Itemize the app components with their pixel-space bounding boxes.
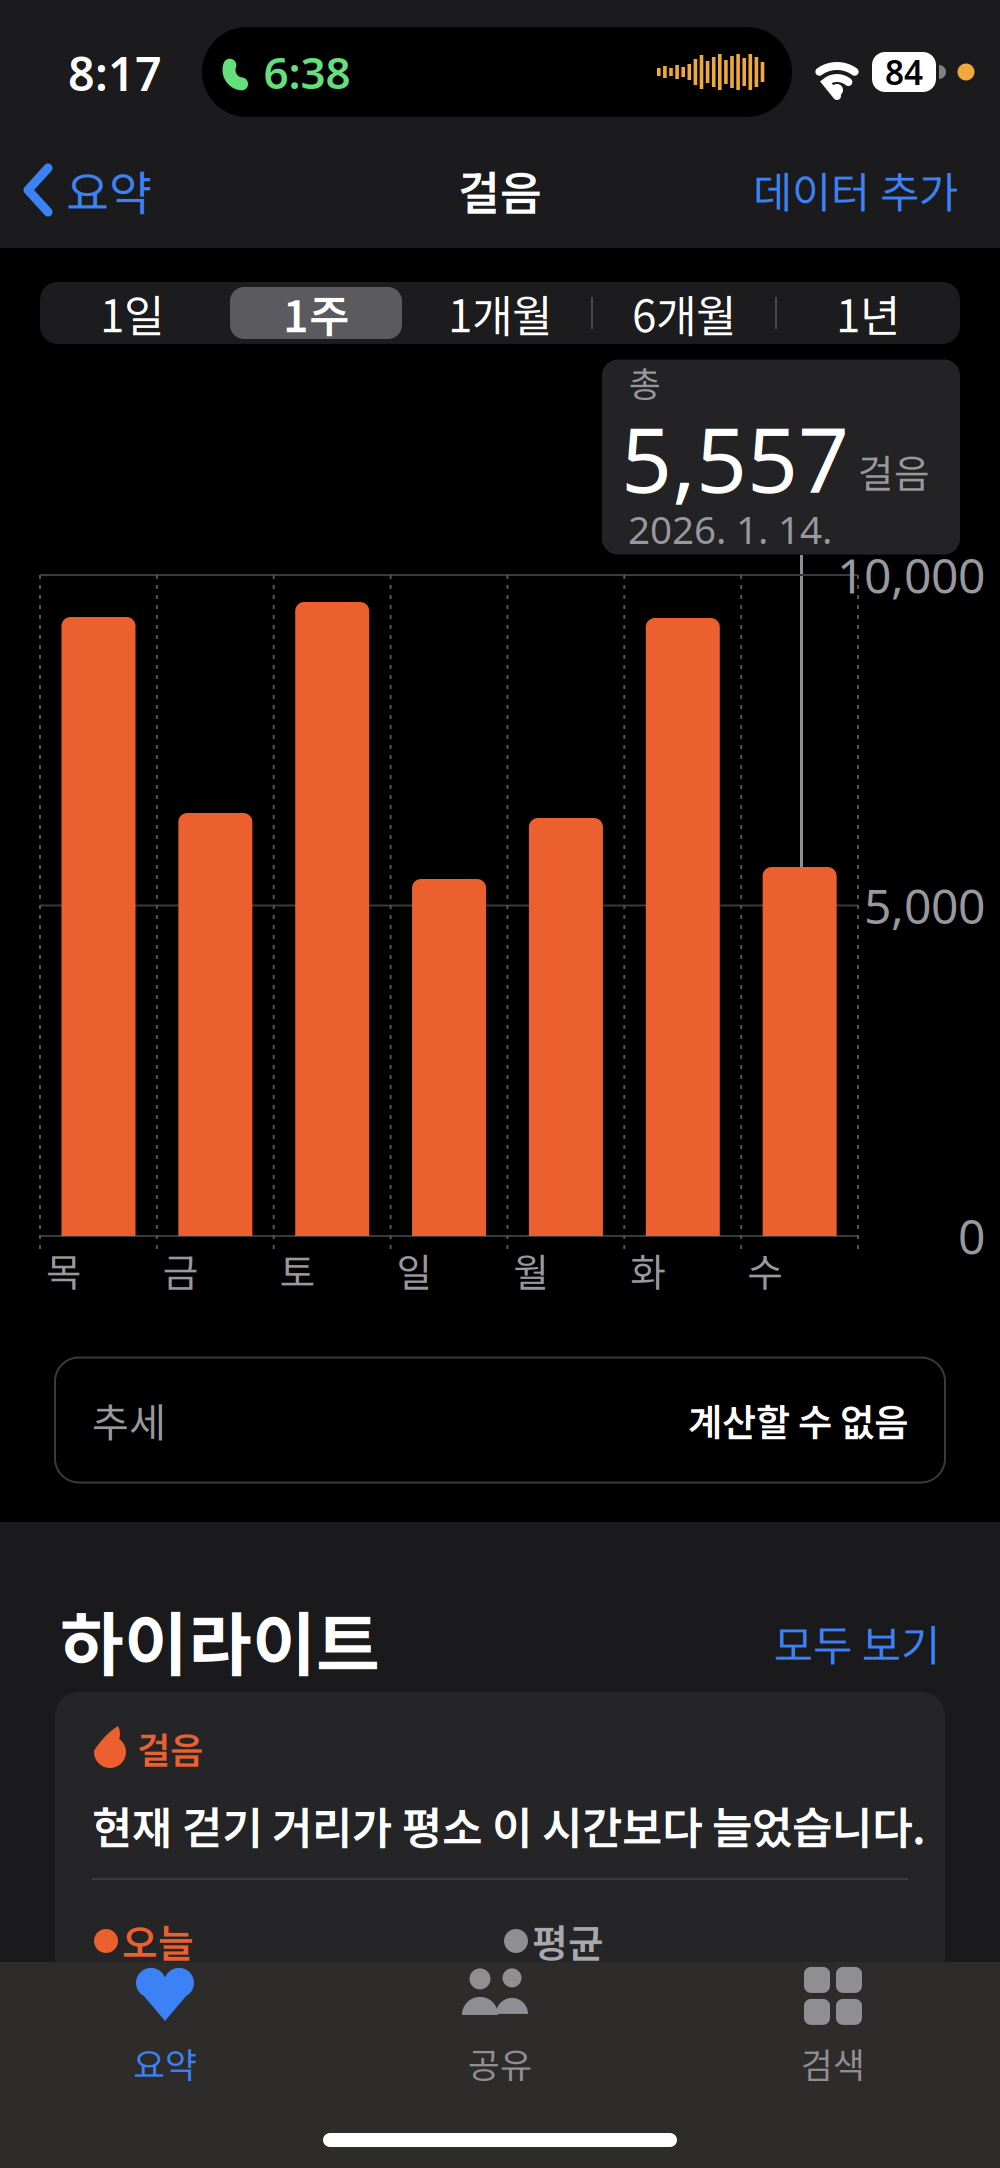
button[interactable]: 추세 <box>55 1357 945 1482</box>
staticText: 계산할 수 없음 <box>688 1393 908 1447</box>
staticText: 현재 걷기 거리가 평소 이 시간보다 늘었습니다. <box>92 1793 926 1857</box>
staticText: 공유 <box>468 2038 532 2088</box>
staticText: 걸음 <box>137 1722 203 1774</box>
staticText: 요약 <box>66 156 152 224</box>
staticText: 2026. 1. 14. <box>628 503 832 555</box>
staticText: 걸음 <box>458 157 542 223</box>
staticText: 요약 <box>133 2038 197 2088</box>
button[interactable]: 1주 <box>224 282 408 344</box>
staticText: 월 <box>513 1242 549 1298</box>
staticText: 하이라이트 <box>60 1590 380 1690</box>
staticText: 목 <box>46 1242 82 1298</box>
staticText: 모두 보기 <box>774 1612 940 1674</box>
button[interactable]: 검색 <box>723 1968 943 2088</box>
staticText: 1주 <box>283 281 349 345</box>
button[interactable]: 1년 <box>776 282 960 344</box>
staticText: 6:38 <box>263 42 350 102</box>
staticText: 금 <box>163 1242 199 1298</box>
staticText: 1개월 <box>448 281 552 345</box>
staticText: 걸음 <box>858 443 930 499</box>
staticText: 84 <box>885 49 923 95</box>
button[interactable]: 6개월 <box>592 282 776 344</box>
button[interactable]: 뒤로 <box>24 150 224 230</box>
staticText: 평균 <box>532 1913 604 1969</box>
staticText: 수 <box>747 1242 783 1298</box>
staticText: 5,000 <box>864 873 985 938</box>
staticText: 검색 <box>801 2038 865 2088</box>
staticText: 추세 <box>92 1391 166 1449</box>
staticText: 토 <box>280 1242 316 1298</box>
staticText: 데이터 추가 <box>753 159 958 221</box>
staticText: 오늘 <box>122 1913 194 1969</box>
staticText: 총 <box>629 357 661 407</box>
staticText: 5,557 <box>621 397 849 519</box>
button[interactable]: 모두 보기 <box>690 1613 940 1673</box>
button[interactable]: 공유 <box>390 1968 610 2088</box>
staticText: 일 <box>397 1242 433 1298</box>
staticText: 1일 <box>100 281 164 345</box>
staticText: 8:17 <box>68 41 162 105</box>
staticText: 화 <box>630 1242 666 1298</box>
button[interactable]: 1개월 <box>408 282 592 344</box>
button[interactable]: 데이터 추가 <box>658 150 958 230</box>
staticText: 1년 <box>836 281 900 345</box>
button[interactable]: 요약 <box>55 1968 275 2088</box>
button[interactable]: 1일 <box>40 282 224 344</box>
staticText: 10,000 <box>837 542 985 608</box>
button[interactable]: 걸음 <box>55 1692 945 2168</box>
staticText: 0 <box>958 1203 985 1269</box>
staticText: 6개월 <box>632 281 736 345</box>
